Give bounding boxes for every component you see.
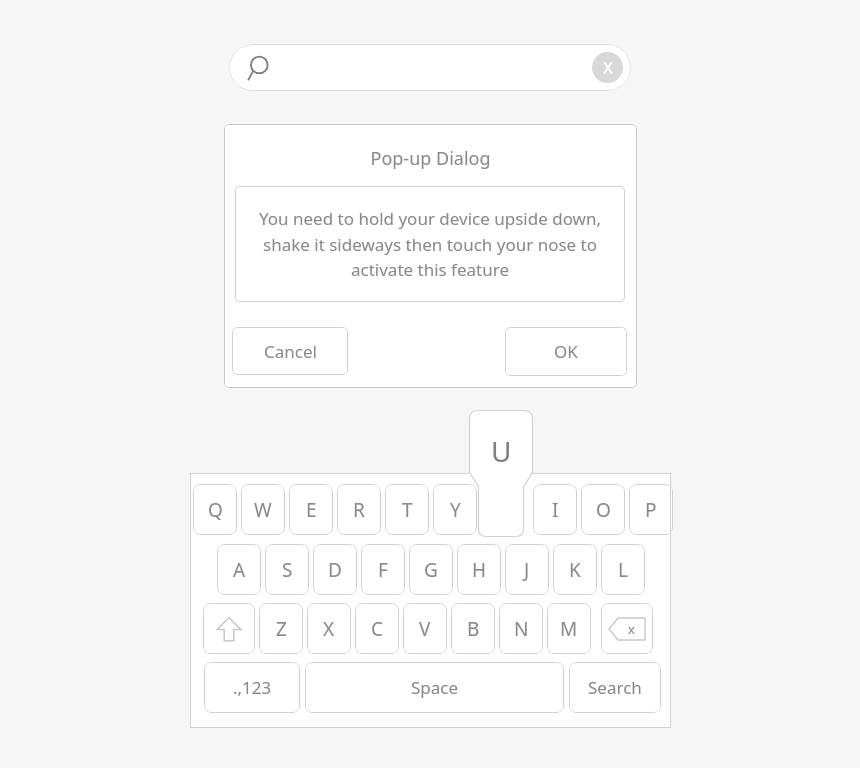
button[interactable]: W bbox=[241, 484, 285, 535]
button[interactable]: V bbox=[403, 603, 447, 654]
button[interactable]: X bbox=[307, 603, 351, 654]
button[interactable]: I bbox=[533, 484, 577, 535]
staticText: You need to hold your device upside down… bbox=[255, 207, 605, 281]
button[interactable]: Cancel bbox=[232, 327, 348, 375]
button[interactable]: L bbox=[601, 544, 645, 595]
button[interactable]: Clear bbox=[592, 52, 623, 83]
staticText: x bbox=[628, 620, 635, 638]
staticText: M bbox=[560, 616, 578, 642]
button[interactable]: S bbox=[265, 544, 309, 595]
staticText: F bbox=[378, 557, 388, 583]
staticText: OK bbox=[554, 340, 578, 363]
button[interactable]: R bbox=[337, 484, 381, 535]
staticText: V bbox=[419, 616, 431, 642]
staticText: X bbox=[603, 56, 613, 79]
button[interactable]: C bbox=[355, 603, 399, 654]
staticText: A bbox=[233, 557, 246, 583]
staticText: T bbox=[402, 497, 413, 523]
staticText: C bbox=[371, 616, 384, 642]
staticText: I bbox=[552, 497, 559, 523]
button[interactable]: Q bbox=[193, 484, 237, 535]
button[interactable]: Z bbox=[259, 603, 303, 654]
staticText: Space bbox=[411, 676, 459, 699]
staticText: G bbox=[424, 557, 438, 583]
button[interactable]: U bbox=[469, 410, 533, 537]
button[interactable]: Search bbox=[569, 662, 661, 713]
staticText: B bbox=[467, 616, 480, 642]
staticText: L bbox=[618, 557, 628, 583]
staticText: Z bbox=[276, 616, 287, 642]
button[interactable]: Y bbox=[433, 484, 477, 535]
staticText: Pop-up Dialog bbox=[370, 146, 491, 171]
staticText: R bbox=[353, 497, 365, 523]
button[interactable]: M bbox=[547, 603, 591, 654]
staticText: .,123 bbox=[233, 676, 272, 699]
button[interactable]: Shift bbox=[203, 603, 255, 654]
staticText: J bbox=[524, 557, 530, 583]
staticText: X bbox=[323, 616, 335, 642]
button[interactable]: Search bbox=[229, 44, 631, 91]
button[interactable]: K bbox=[553, 544, 597, 595]
staticText: Y bbox=[450, 497, 461, 523]
button[interactable]: A bbox=[217, 544, 261, 595]
staticText: D bbox=[328, 557, 342, 583]
button[interactable]: E bbox=[289, 484, 333, 535]
staticText: N bbox=[514, 616, 529, 642]
button[interactable]: N bbox=[499, 603, 543, 654]
staticText: Search bbox=[588, 676, 642, 699]
button[interactable]: Search bbox=[243, 53, 273, 83]
staticText: Cancel bbox=[264, 340, 317, 363]
button[interactable]: O bbox=[581, 484, 625, 535]
staticText: O bbox=[596, 497, 611, 523]
button[interactable]: B bbox=[451, 603, 495, 654]
button[interactable]: F bbox=[361, 544, 405, 595]
staticText: S bbox=[282, 557, 293, 583]
staticText: Q bbox=[208, 497, 223, 523]
staticText: H bbox=[472, 557, 487, 583]
button[interactable]: P bbox=[629, 484, 673, 535]
button[interactable]: J bbox=[505, 544, 549, 595]
staticText: U bbox=[491, 432, 512, 470]
button[interactable]: Backspace bbox=[601, 603, 653, 654]
button[interactable]: T bbox=[385, 484, 429, 535]
staticText: W bbox=[254, 497, 272, 523]
button[interactable]: D bbox=[313, 544, 357, 595]
button[interactable]: .,123 bbox=[204, 662, 300, 713]
button[interactable]: G bbox=[409, 544, 453, 595]
button[interactable]: Space bbox=[305, 662, 564, 713]
staticText: E bbox=[306, 497, 317, 523]
staticText: P bbox=[645, 497, 657, 523]
button[interactable]: H bbox=[457, 544, 501, 595]
staticText: K bbox=[569, 557, 581, 583]
button[interactable]: OK bbox=[505, 327, 627, 376]
